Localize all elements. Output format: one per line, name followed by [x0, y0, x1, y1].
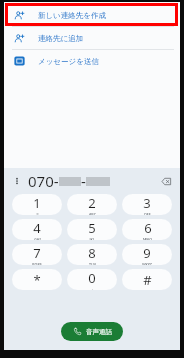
staticText: 3	[143, 194, 151, 212]
button[interactable]: 3	[122, 194, 172, 215]
staticText: JKL	[89, 237, 95, 240]
staticText: 5	[88, 219, 96, 237]
button[interactable]: 0	[67, 269, 117, 290]
staticText: ∞	[36, 212, 39, 215]
staticText: *	[33, 271, 41, 289]
button[interactable]: 6	[122, 219, 172, 240]
staticText: 2	[88, 194, 96, 212]
staticText: 連絡先に追加	[38, 34, 84, 43]
button[interactable]: 8	[67, 244, 117, 265]
button[interactable]: 7	[12, 244, 62, 265]
button[interactable]: Backspace	[158, 173, 174, 189]
staticText: PQRS	[32, 262, 42, 265]
button[interactable]: 連絡先に追加	[4, 27, 180, 49]
staticText: ABC	[89, 212, 96, 215]
staticText: 4	[33, 219, 41, 237]
button[interactable]: メッセージを送信	[4, 50, 180, 72]
staticText: -	[81, 171, 86, 191]
staticText: 新しい連絡先を作成	[38, 11, 107, 20]
button[interactable]: 音声通話	[61, 322, 123, 341]
staticText: GHI	[34, 237, 41, 240]
staticText: 0	[88, 269, 96, 287]
staticText: 6	[144, 219, 152, 237]
staticText: 7	[33, 244, 41, 262]
staticText: メッセージを送信	[38, 57, 99, 66]
staticText: DEF	[144, 212, 151, 215]
staticText: 1	[33, 194, 41, 212]
button[interactable]: 9	[122, 244, 172, 265]
staticText: 070-	[28, 171, 59, 191]
staticText: TUV	[89, 262, 96, 265]
button[interactable]: *	[12, 269, 62, 290]
button[interactable]: 2	[67, 194, 117, 215]
button[interactable]: 新しい連絡先を作成	[4, 4, 180, 26]
button[interactable]: More options	[10, 174, 24, 188]
staticText: 音声通話	[86, 328, 112, 336]
staticText: WXYZ	[142, 262, 152, 265]
staticText: MNO	[143, 237, 152, 240]
button[interactable]: 1	[12, 194, 62, 215]
staticText: 8	[88, 244, 96, 262]
staticText: 9	[143, 244, 151, 262]
button[interactable]: #	[122, 269, 172, 290]
button[interactable]: 4	[12, 219, 62, 240]
button[interactable]: 5	[67, 219, 117, 240]
staticText: #	[143, 271, 152, 289]
staticText: +	[91, 287, 94, 290]
